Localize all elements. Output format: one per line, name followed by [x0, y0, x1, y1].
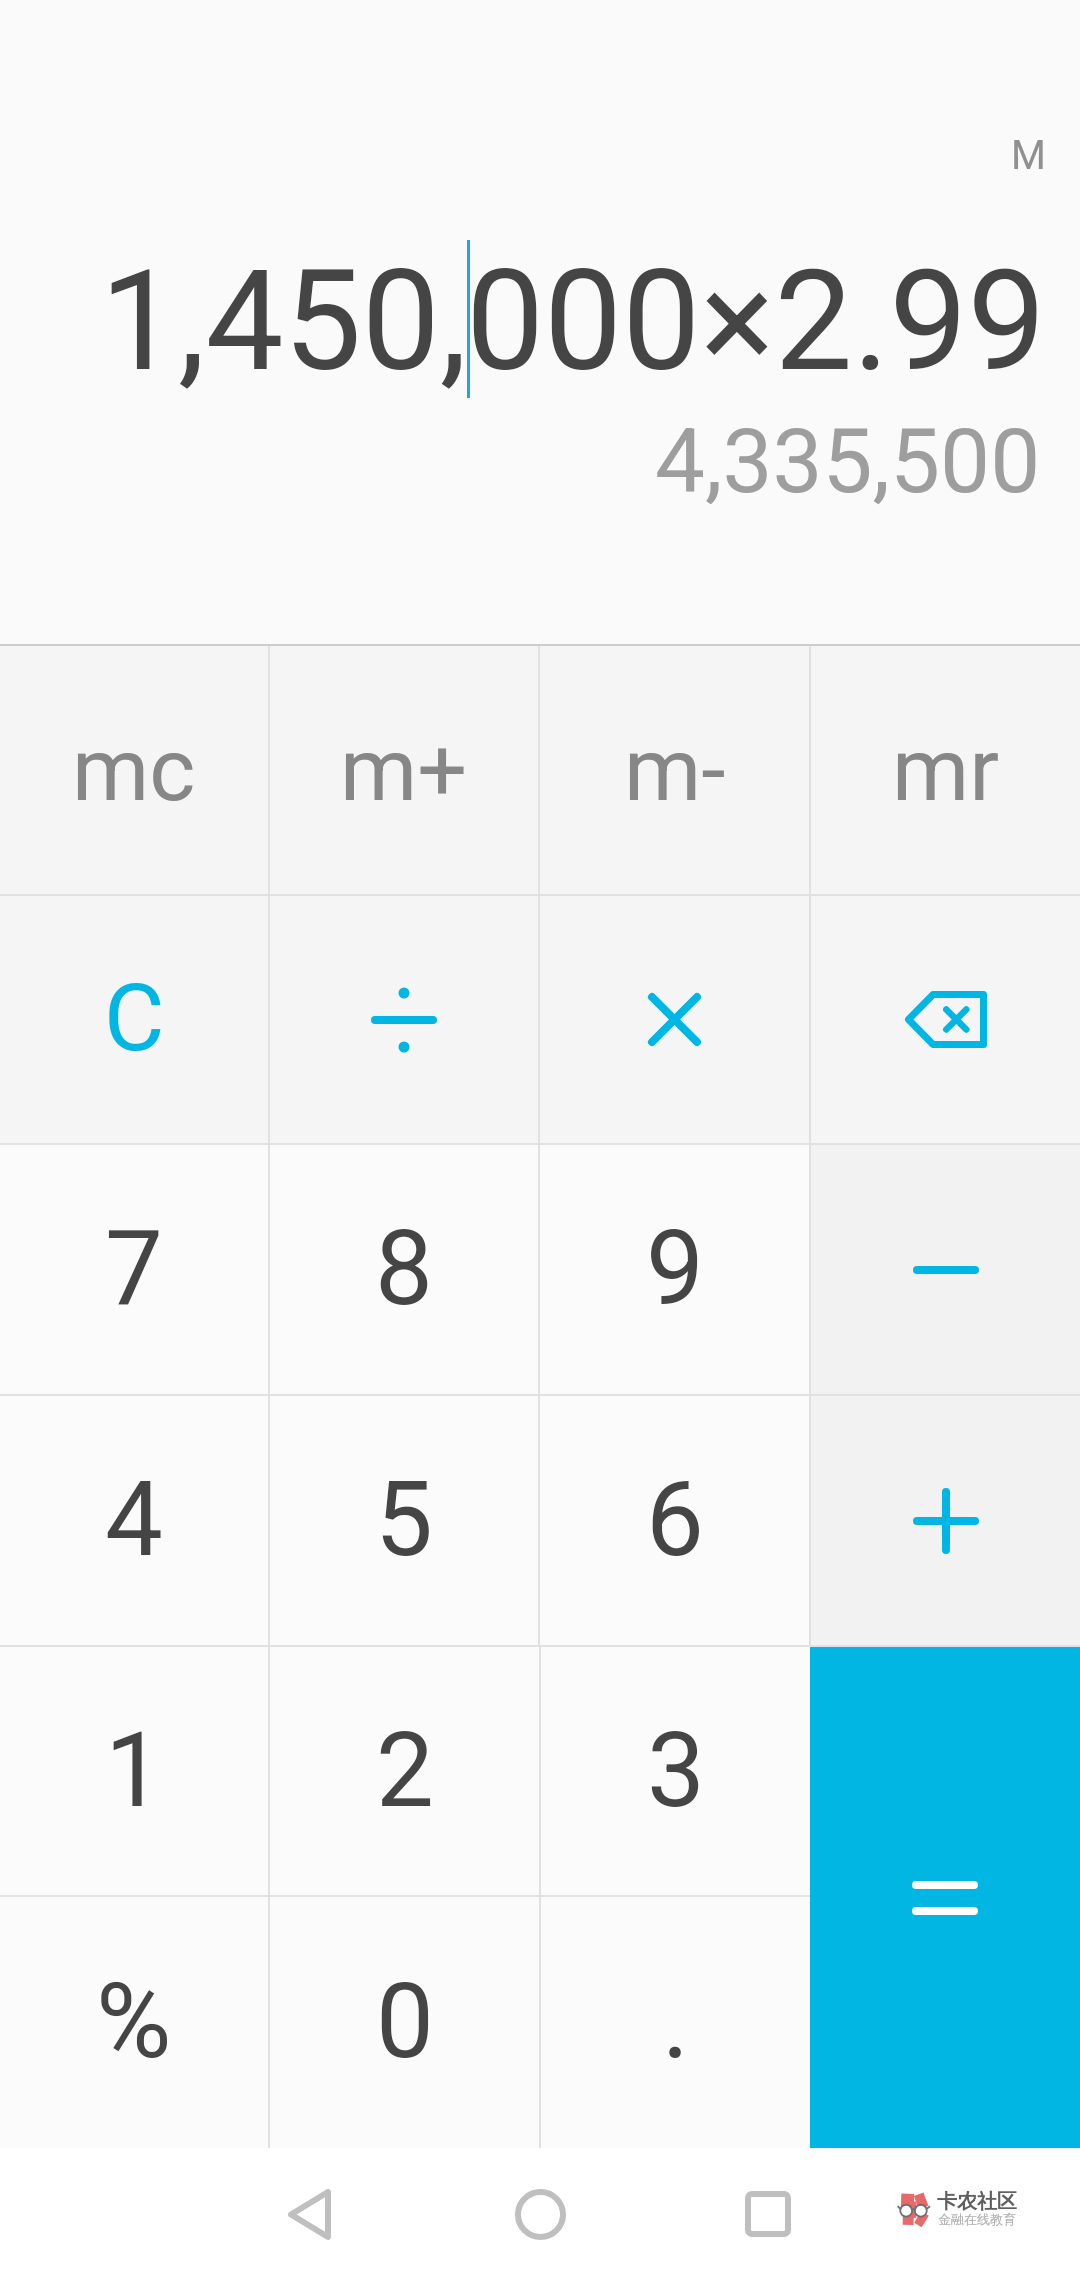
button[interactable]: mc	[0, 646, 268, 894]
staticText: M	[1011, 132, 1046, 179]
staticText: 7	[105, 1208, 163, 1329]
staticText: mr	[892, 718, 999, 821]
staticText: 6	[646, 1459, 704, 1580]
button[interactable]: 1	[0, 1647, 268, 1895]
button[interactable]: Recents	[708, 2148, 828, 2280]
staticText: m+	[340, 718, 468, 821]
button[interactable]: Plus	[811, 1396, 1080, 1645]
button[interactable]: 0	[270, 1897, 539, 2148]
staticText: 9	[646, 1208, 704, 1329]
staticText: C	[104, 964, 165, 1073]
staticText: 5	[375, 1459, 433, 1580]
button[interactable]: Home	[480, 2148, 600, 2280]
staticText: 4,335,500	[655, 409, 1041, 513]
staticText: mc	[72, 718, 196, 821]
button[interactable]: m-	[540, 646, 809, 894]
staticText: 8	[375, 1208, 433, 1329]
button[interactable]: %	[0, 1897, 268, 2148]
staticText: %	[96, 1961, 172, 2082]
button[interactable]: mr	[811, 646, 1080, 894]
staticText: 1,450,	[100, 240, 468, 403]
button[interactable]: Minus	[811, 1145, 1080, 1394]
button[interactable]: C	[0, 896, 268, 1143]
button[interactable]: Back	[248, 2148, 368, 2280]
button[interactable]: 7	[0, 1145, 268, 1394]
button[interactable]: 3	[541, 1647, 810, 1895]
button[interactable]: 5	[270, 1396, 538, 1645]
button[interactable]: 4	[0, 1396, 268, 1645]
staticText: 2	[376, 1710, 434, 1831]
button[interactable]: 2	[270, 1647, 539, 1895]
staticText: 000×2.99	[466, 240, 1046, 403]
staticText: 金融在线教育	[938, 2211, 1016, 2227]
button[interactable]: Divide	[270, 896, 538, 1143]
button[interactable]: .	[541, 1897, 810, 2148]
button[interactable]: Backspace	[811, 896, 1080, 1143]
staticText: 卡农社区	[937, 2189, 1017, 2214]
staticText: .	[662, 1961, 690, 2082]
button[interactable]: 9	[540, 1145, 809, 1394]
button[interactable]: 8	[270, 1145, 538, 1394]
button[interactable]: 6	[540, 1396, 809, 1645]
staticText: 0	[376, 1961, 434, 2082]
staticText: 1	[105, 1710, 163, 1831]
button[interactable]: Equals	[810, 1647, 1080, 2148]
button[interactable]: m+	[270, 646, 538, 894]
staticText: 4	[105, 1459, 163, 1580]
staticText: m-	[624, 718, 726, 821]
staticText: 3	[647, 1710, 705, 1831]
button[interactable]: Multiply	[540, 896, 809, 1143]
